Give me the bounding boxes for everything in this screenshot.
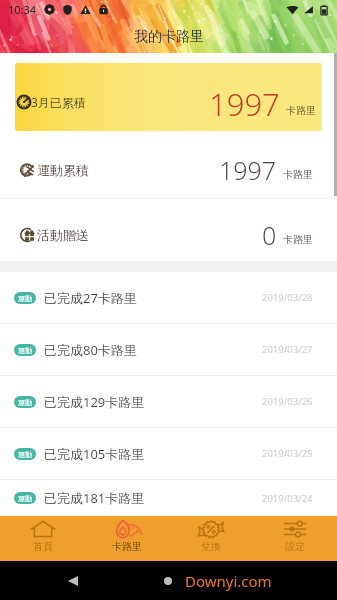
button[interactable]: 運動 (0, 272, 337, 323)
button[interactable]: Back (62, 570, 84, 592)
staticText: 已完成80卡路里 (44, 341, 137, 359)
staticText: 我的卡路里 (134, 28, 204, 46)
button[interactable]: Home (157, 570, 179, 592)
staticText: 3月已累積 (31, 94, 86, 110)
button[interactable]: 運動 (0, 324, 337, 375)
staticText: 已完成27卡路里 (44, 289, 137, 307)
staticText: 2019/03/26 (262, 395, 313, 408)
staticText: 運動 (18, 450, 32, 459)
staticText: 1997 (209, 83, 280, 125)
staticText: 卡路里 (283, 233, 313, 246)
button[interactable]: 運動累積 (0, 131, 337, 198)
staticText: 已完成181卡路里 (44, 489, 145, 507)
staticText: 卡路里 (112, 540, 142, 553)
button[interactable]: 3月已累積 (15, 63, 322, 131)
button[interactable]: 運動 (0, 376, 337, 427)
staticText: 設定 (285, 540, 305, 553)
staticText: 活動贈送 (37, 227, 89, 243)
staticText: 運動 (18, 398, 32, 407)
staticText: Downyi.com (185, 571, 272, 591)
staticText: 2019/03/24 (262, 492, 313, 505)
staticText: 10:34 (8, 2, 37, 17)
button[interactable]: 活動贈送 (0, 199, 337, 261)
staticText: 2019/03/28 (262, 291, 313, 304)
button[interactable]: 設定 (253, 516, 337, 553)
staticText: 運動累積 (37, 162, 89, 178)
staticText: 0 (262, 218, 277, 252)
staticText: 兌換 (201, 540, 221, 553)
button[interactable]: 兌換 (169, 516, 253, 553)
button[interactable]: 運動 (0, 480, 337, 516)
staticText: 卡路里 (286, 104, 316, 117)
staticText: 1997 (219, 153, 277, 187)
staticText: 2019/03/25 (262, 447, 313, 460)
button[interactable]: 首頁 (0, 516, 85, 553)
staticText: 已完成129卡路里 (44, 393, 145, 411)
staticText: 運動 (18, 494, 32, 503)
button[interactable]: 卡路里 (85, 516, 169, 553)
staticText: 運動 (18, 294, 32, 303)
staticText: 首頁 (33, 540, 53, 553)
button[interactable]: 運動 (0, 428, 337, 479)
staticText: 卡路里 (283, 168, 313, 181)
staticText: 已完成105卡路里 (44, 445, 145, 463)
staticText: 運動 (18, 346, 32, 355)
staticText: 2019/03/27 (262, 343, 313, 356)
